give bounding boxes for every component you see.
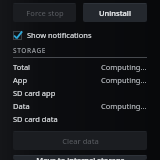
button[interactable]: Total [0, 60, 160, 73]
button[interactable]: Force stop [13, 3, 76, 22]
button[interactable]: Data [0, 99, 160, 112]
staticText: STORAGE [13, 46, 46, 55]
staticText: SD card app [13, 88, 56, 98]
staticText: App [13, 75, 28, 85]
staticText: Computing… [101, 75, 147, 85]
staticText: Computing… [101, 62, 147, 72]
button[interactable]: SD card app [0, 86, 160, 99]
staticText: Show notifications [27, 30, 92, 40]
staticText: Computing… [101, 101, 147, 111]
button[interactable]: Clear data [13, 131, 147, 150]
button[interactable]: Uninstall [83, 3, 147, 22]
staticText: Total [13, 62, 31, 72]
staticText: SD card data [13, 114, 58, 124]
other: Show notifications checkbox [13, 31, 22, 40]
staticText: Data [13, 101, 30, 111]
staticText: Uninstall [99, 8, 131, 18]
staticText: Clear data [62, 136, 99, 146]
staticText: Move to internal storage [36, 155, 125, 160]
staticText: Force stop [26, 8, 64, 18]
button[interactable]: Move to internal storage [13, 155, 147, 160]
button[interactable]: Show notifications checkbox [0, 28, 160, 42]
button[interactable]: SD card data [0, 112, 160, 125]
button[interactable]: App [0, 73, 160, 86]
